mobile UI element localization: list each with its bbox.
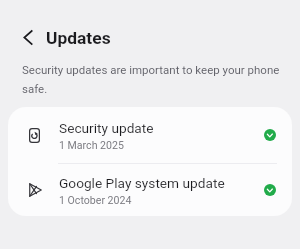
staticText: Security update: [59, 120, 154, 136]
button[interactable]: Google Play system update: [8, 164, 292, 216]
staticText: Security updates are important to keep y…: [22, 63, 282, 96]
staticText: Google Play system update: [59, 175, 225, 191]
staticText: 1 October 2024: [59, 194, 132, 206]
staticText: Updates: [46, 28, 111, 48]
button[interactable]: Security update: [8, 107, 292, 163]
button[interactable]: Back: [17, 26, 39, 48]
staticText: 1 March 2025: [59, 139, 124, 151]
